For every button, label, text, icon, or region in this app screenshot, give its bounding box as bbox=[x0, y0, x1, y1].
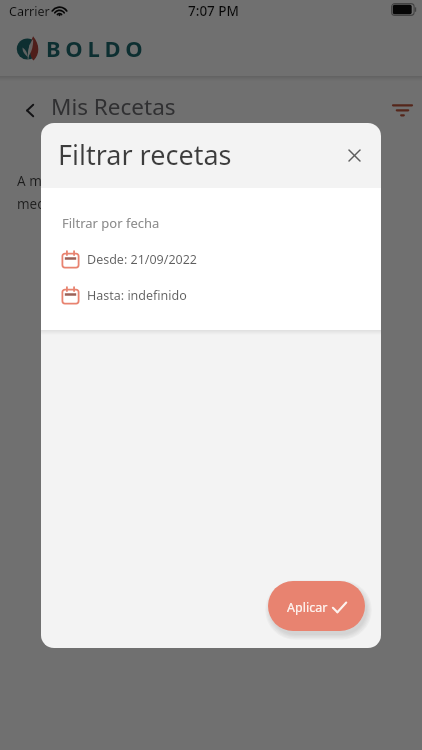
staticText: Carrier bbox=[9, 3, 50, 20]
staticText: Aplicar bbox=[287, 599, 328, 616]
button[interactable]: Hasta: indefinido bbox=[60, 285, 187, 306]
staticText: BOLDO bbox=[46, 33, 148, 63]
staticText: 7:07 PM bbox=[188, 2, 239, 20]
staticText: Mis Recetas bbox=[51, 91, 176, 122]
button[interactable]: Filter bbox=[389, 98, 415, 124]
staticText: Desde: 21/09/2022 bbox=[87, 251, 198, 268]
staticText: Hasta: indefinido bbox=[87, 287, 187, 304]
staticText: Filtrar por fecha bbox=[62, 214, 160, 232]
button[interactable]: Desde: 21/09/2022 bbox=[60, 249, 198, 270]
staticText: A mi lista de recetas se agregan bbox=[17, 172, 218, 190]
button[interactable]: Back bbox=[17, 97, 43, 123]
staticText: Filtrar recetas bbox=[58, 136, 232, 173]
staticText: medicamentos recetados bbox=[17, 195, 178, 213]
button[interactable]: Close bbox=[339, 140, 369, 170]
button[interactable]: Aplicar bbox=[268, 581, 365, 631]
